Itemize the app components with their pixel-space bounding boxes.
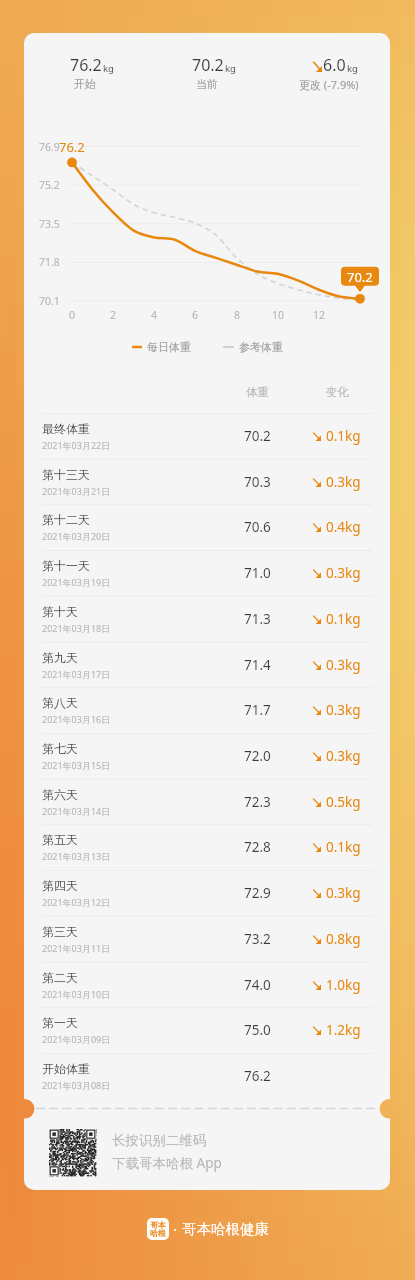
staticText: 72.8 — [244, 838, 271, 856]
staticText: 2021年03月14日 — [42, 805, 111, 817]
button[interactable]: 第三天 — [24, 916, 390, 962]
staticText: 72.9 — [244, 884, 271, 902]
button[interactable]: 第五天 — [24, 824, 390, 870]
staticText: 0.1kg — [326, 838, 361, 856]
staticText: 2021年03月10日 — [42, 988, 111, 1000]
staticText: kg — [225, 62, 236, 75]
button[interactable]: 第八天 — [24, 687, 390, 733]
staticText: 6 — [192, 308, 199, 322]
staticText: 第一天 — [42, 1015, 78, 1030]
staticText: 0.3kg — [326, 747, 361, 765]
button[interactable]: 第十一天 — [24, 550, 390, 596]
staticText: 71.3 — [244, 610, 271, 628]
staticText: 1.2kg — [326, 1021, 361, 1039]
staticText: 2021年03月11日 — [42, 942, 111, 954]
button[interactable]: 第四天 — [24, 870, 390, 916]
staticText: 0.1kg — [326, 427, 361, 445]
staticText: 70.1 — [39, 294, 60, 308]
staticText: kg — [103, 62, 114, 75]
staticText: 第四天 — [42, 878, 78, 893]
staticText: 75.0 — [244, 1021, 271, 1039]
staticText: 0 — [69, 308, 76, 322]
staticText: 开始 — [74, 77, 96, 91]
staticText: 0.5kg — [326, 793, 361, 811]
staticText: 76.2 — [59, 138, 85, 156]
staticText: 2021年03月22日 — [42, 439, 111, 451]
staticText: 2021年03月18日 — [42, 622, 111, 634]
staticText: 72.0 — [244, 747, 271, 765]
staticText: 10 — [272, 308, 285, 322]
staticText: 2021年03月15日 — [42, 759, 111, 771]
staticText: 长按识别二维码 — [112, 1132, 207, 1149]
staticText: 0.8kg — [326, 930, 361, 948]
staticText: 参考体重 — [239, 340, 283, 354]
staticText: 第十二天 — [42, 512, 90, 527]
staticText: 2021年03月09日 — [42, 1033, 111, 1045]
staticText: 0.3kg — [326, 473, 361, 491]
button[interactable]: 第十二天 — [24, 504, 390, 550]
button[interactable]: 第七天 — [24, 733, 390, 779]
staticText: 2021年03月20日 — [42, 530, 111, 542]
staticText: 72.3 — [244, 793, 271, 811]
button[interactable]: 第一天 — [24, 1007, 390, 1053]
staticText: 第十一天 — [42, 558, 90, 573]
staticText: 0.4kg — [326, 518, 361, 536]
staticText: 0.3kg — [326, 564, 361, 582]
staticText: 8 — [234, 308, 241, 322]
staticText: 0.3kg — [326, 656, 361, 674]
staticText: 70.6 — [244, 518, 271, 536]
staticText: 哥本哈根健康 — [182, 1220, 269, 1238]
staticText: 第三天 — [42, 924, 78, 939]
staticText: 2021年03月12日 — [42, 896, 111, 908]
staticText: 73.5 — [39, 217, 60, 231]
staticText: 下载哥本哈根 App — [112, 1154, 222, 1172]
staticText: 0.1kg — [326, 610, 361, 628]
staticText: 70.2 — [347, 268, 373, 286]
staticText: 75.2 — [39, 178, 60, 192]
staticText: 73.2 — [244, 930, 271, 948]
staticText: 最终体重 — [42, 421, 90, 436]
staticText: 70.3 — [244, 473, 271, 491]
staticText: 1.0kg — [326, 976, 361, 994]
staticText: 76.9 — [39, 140, 60, 154]
staticText: 2 — [110, 308, 117, 322]
staticText: 第十三天 — [42, 467, 90, 482]
staticText: 12 — [313, 308, 326, 322]
staticText: 6.0 — [323, 54, 346, 76]
staticText: 第十天 — [42, 604, 78, 619]
staticText: 2021年03月21日 — [42, 485, 111, 497]
staticText: 70.2 — [192, 54, 224, 76]
staticText: 0.3kg — [326, 884, 361, 902]
button[interactable]: 第十三天 — [24, 459, 390, 505]
button[interactable]: 开始体重 — [24, 1053, 390, 1099]
button[interactable]: 第九天 — [24, 642, 390, 688]
button[interactable]: 第二天 — [24, 962, 390, 1008]
staticText: 体重 — [246, 385, 269, 399]
staticText: 2021年03月13日 — [42, 850, 111, 862]
staticText: 第二天 — [42, 970, 78, 985]
staticText: 第九天 — [42, 650, 78, 665]
staticText: 变化 — [326, 385, 349, 399]
staticText: 开始体重 — [42, 1061, 90, 1076]
staticText: 70.2 — [244, 427, 271, 445]
staticText: 第五天 — [42, 832, 78, 847]
staticText: 更改 (-7.9%) — [299, 77, 359, 92]
staticText: 2021年03月19日 — [42, 576, 111, 588]
staticText: 当前 — [196, 77, 218, 91]
staticText: 2021年03月16日 — [42, 713, 111, 725]
button[interactable]: 第十天 — [24, 596, 390, 642]
staticText: · — [173, 1219, 178, 1239]
staticText: 4 — [151, 308, 158, 322]
staticText: 每日体重 — [147, 340, 191, 354]
staticText: 71.8 — [39, 255, 60, 269]
staticText: 71.0 — [244, 564, 271, 582]
staticText: 第七天 — [42, 741, 78, 756]
button[interactable]: 第六天 — [24, 779, 390, 825]
staticText: 第八天 — [42, 695, 78, 710]
staticText: 71.7 — [244, 701, 271, 719]
staticText: 第六天 — [42, 787, 78, 802]
staticText: 2021年03月08日 — [42, 1079, 111, 1091]
button[interactable]: 最终体重 — [24, 413, 390, 459]
staticText: 76.2 — [244, 1067, 271, 1085]
staticText: 2021年03月17日 — [42, 668, 111, 680]
